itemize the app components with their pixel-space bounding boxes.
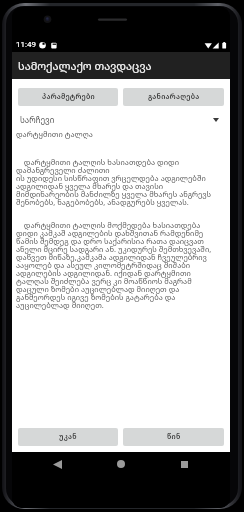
staticText: პარამეტრები bbox=[42, 92, 95, 102]
staticText: სამოქალაქო თავდაცვა bbox=[18, 58, 152, 73]
staticText: სარჩევი bbox=[20, 114, 55, 125]
button[interactable]: წინ bbox=[123, 428, 224, 446]
button[interactable]: სარჩევი bbox=[20, 114, 219, 125]
button[interactable]: პარამეტრები bbox=[18, 88, 118, 106]
button[interactable]: განიარაღება bbox=[123, 88, 224, 106]
button[interactable]: უკან bbox=[18, 428, 118, 446]
button[interactable]: Recents bbox=[172, 452, 196, 476]
staticText: დარტყმითი ტალღა bbox=[16, 129, 93, 139]
staticText: 11:49 bbox=[16, 40, 36, 49]
staticText: უკან bbox=[59, 432, 77, 442]
staticText: დარტყმითი ტალღის მოქმედება ხასიათდება დი… bbox=[16, 220, 216, 310]
button[interactable]: Back bbox=[45, 452, 69, 476]
staticText: წინ bbox=[167, 432, 181, 442]
button[interactable]: Home bbox=[109, 452, 133, 476]
staticText: განიარაღება bbox=[148, 92, 200, 102]
staticText: დარტყმითი ტალღის ხასიათდება დიდი დამანგრ… bbox=[16, 157, 216, 207]
